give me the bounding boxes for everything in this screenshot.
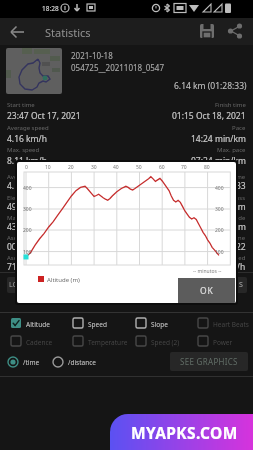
button[interactable]: /distance	[52, 355, 112, 369]
staticText: 8.11 km/h	[7, 155, 47, 167]
staticText: Speed	[88, 320, 107, 329]
staticText: 0	[25, 164, 28, 171]
staticText: 14:24 min/km	[191, 133, 246, 145]
staticText: 433 m	[7, 221, 32, 233]
staticText: 50	[136, 164, 142, 171]
staticText: Cadence	[26, 338, 53, 347]
button[interactable]: Altitude	[10, 317, 68, 331]
staticText: 400	[23, 185, 32, 192]
staticText: Slope	[151, 320, 168, 329]
staticText: Heart Beats	[213, 320, 249, 329]
button[interactable]: /time	[7, 355, 52, 369]
staticText: 01:07:33	[212, 180, 246, 192]
staticText: 80	[204, 164, 210, 171]
staticText: Min. altitude	[210, 214, 246, 222]
staticText: Altitude	[26, 320, 50, 329]
staticText: Moving time	[210, 173, 246, 181]
staticText: OK	[200, 285, 214, 297]
staticText: Statistics	[45, 25, 91, 40]
button[interactable]: Cadence	[10, 335, 68, 349]
staticText: 300	[23, 206, 32, 213]
button[interactable]: Slope	[135, 317, 193, 331]
button[interactable]	[8, 22, 28, 42]
staticText: 01:15 Oct 18, 2021	[172, 110, 246, 122]
staticText: 400	[215, 185, 224, 192]
staticText: 26 m	[226, 221, 246, 233]
staticText: 00:32:22	[212, 241, 246, 253]
staticText: 00:55:33	[7, 241, 41, 253]
staticText: Max. pace	[217, 146, 246, 154]
button[interactable]: Speed (2)	[135, 335, 193, 349]
staticText: 60	[159, 164, 165, 171]
staticText: 300	[215, 206, 224, 213]
button[interactable]: Power	[197, 335, 253, 349]
staticText: Ascent speed	[7, 254, 45, 262]
staticText: -- minutos --	[193, 268, 222, 275]
staticText: Average speed	[7, 124, 49, 132]
staticText: Ascent time	[7, 234, 41, 242]
staticText: 493 m	[7, 201, 32, 213]
staticText: 07:24 min/km	[191, 155, 246, 167]
staticText: Pace	[232, 124, 246, 132]
staticText: 30	[91, 164, 97, 171]
staticText: Max. altitude	[7, 214, 44, 222]
staticText: 18:28	[42, 4, 59, 13]
staticText: Power	[213, 338, 233, 347]
button[interactable]: Heart Beats	[197, 317, 253, 331]
button[interactable]: Temperature	[72, 335, 130, 349]
staticText: MYAPKS.COM	[131, 422, 238, 443]
staticText: S	[239, 280, 243, 290]
button[interactable]: SEE GRAPHICS	[170, 352, 248, 371]
staticText: 905 m/h	[212, 261, 246, 273]
staticText: 6.14 km (01:28:33)	[174, 80, 247, 92]
staticText: 70	[181, 164, 187, 171]
staticText: Descent time	[208, 234, 246, 242]
button[interactable]	[197, 21, 217, 41]
staticText: 054725__20211018_0547	[71, 62, 165, 73]
staticText: Elevation loss	[207, 194, 246, 202]
staticText: 23:47 Oct 17, 2021	[7, 110, 81, 122]
button[interactable]: MYAPKS.COM	[110, 414, 253, 450]
staticText: 712 m/h	[7, 261, 41, 273]
staticText: Temperature	[88, 338, 128, 347]
staticText: Finish time	[215, 101, 246, 109]
staticText: 20	[68, 164, 74, 171]
button[interactable]	[6, 48, 62, 94]
staticText: 2021-10-18	[71, 50, 113, 61]
staticText: 100	[23, 249, 32, 256]
staticText: 100	[215, 249, 224, 256]
staticText: 10	[45, 164, 51, 171]
staticText: Avg speed mov.	[7, 173, 52, 181]
staticText: 4.16 km/h	[7, 133, 47, 145]
staticText: 200	[23, 227, 32, 234]
button[interactable]: OK	[178, 278, 235, 303]
staticText: SEE GRAPHICS	[180, 356, 238, 367]
button[interactable]: Speed	[72, 317, 130, 331]
staticText: 40	[113, 164, 119, 171]
staticText: /distance	[68, 358, 97, 367]
staticText: 4.17 km/h	[7, 180, 47, 192]
staticText: /time	[23, 358, 40, 367]
staticText: Descent speed	[204, 254, 246, 262]
staticText: Speed (2)	[151, 338, 180, 347]
button[interactable]	[225, 21, 245, 41]
staticText: 487 m	[221, 201, 246, 213]
staticText: Altitude (m)	[47, 276, 80, 284]
staticText: Max. speed	[7, 146, 40, 154]
staticText: LOAD	[9, 280, 28, 290]
staticText: Elevation gain	[7, 194, 47, 202]
staticText: Start time	[7, 101, 35, 109]
staticText: 200	[215, 227, 224, 234]
